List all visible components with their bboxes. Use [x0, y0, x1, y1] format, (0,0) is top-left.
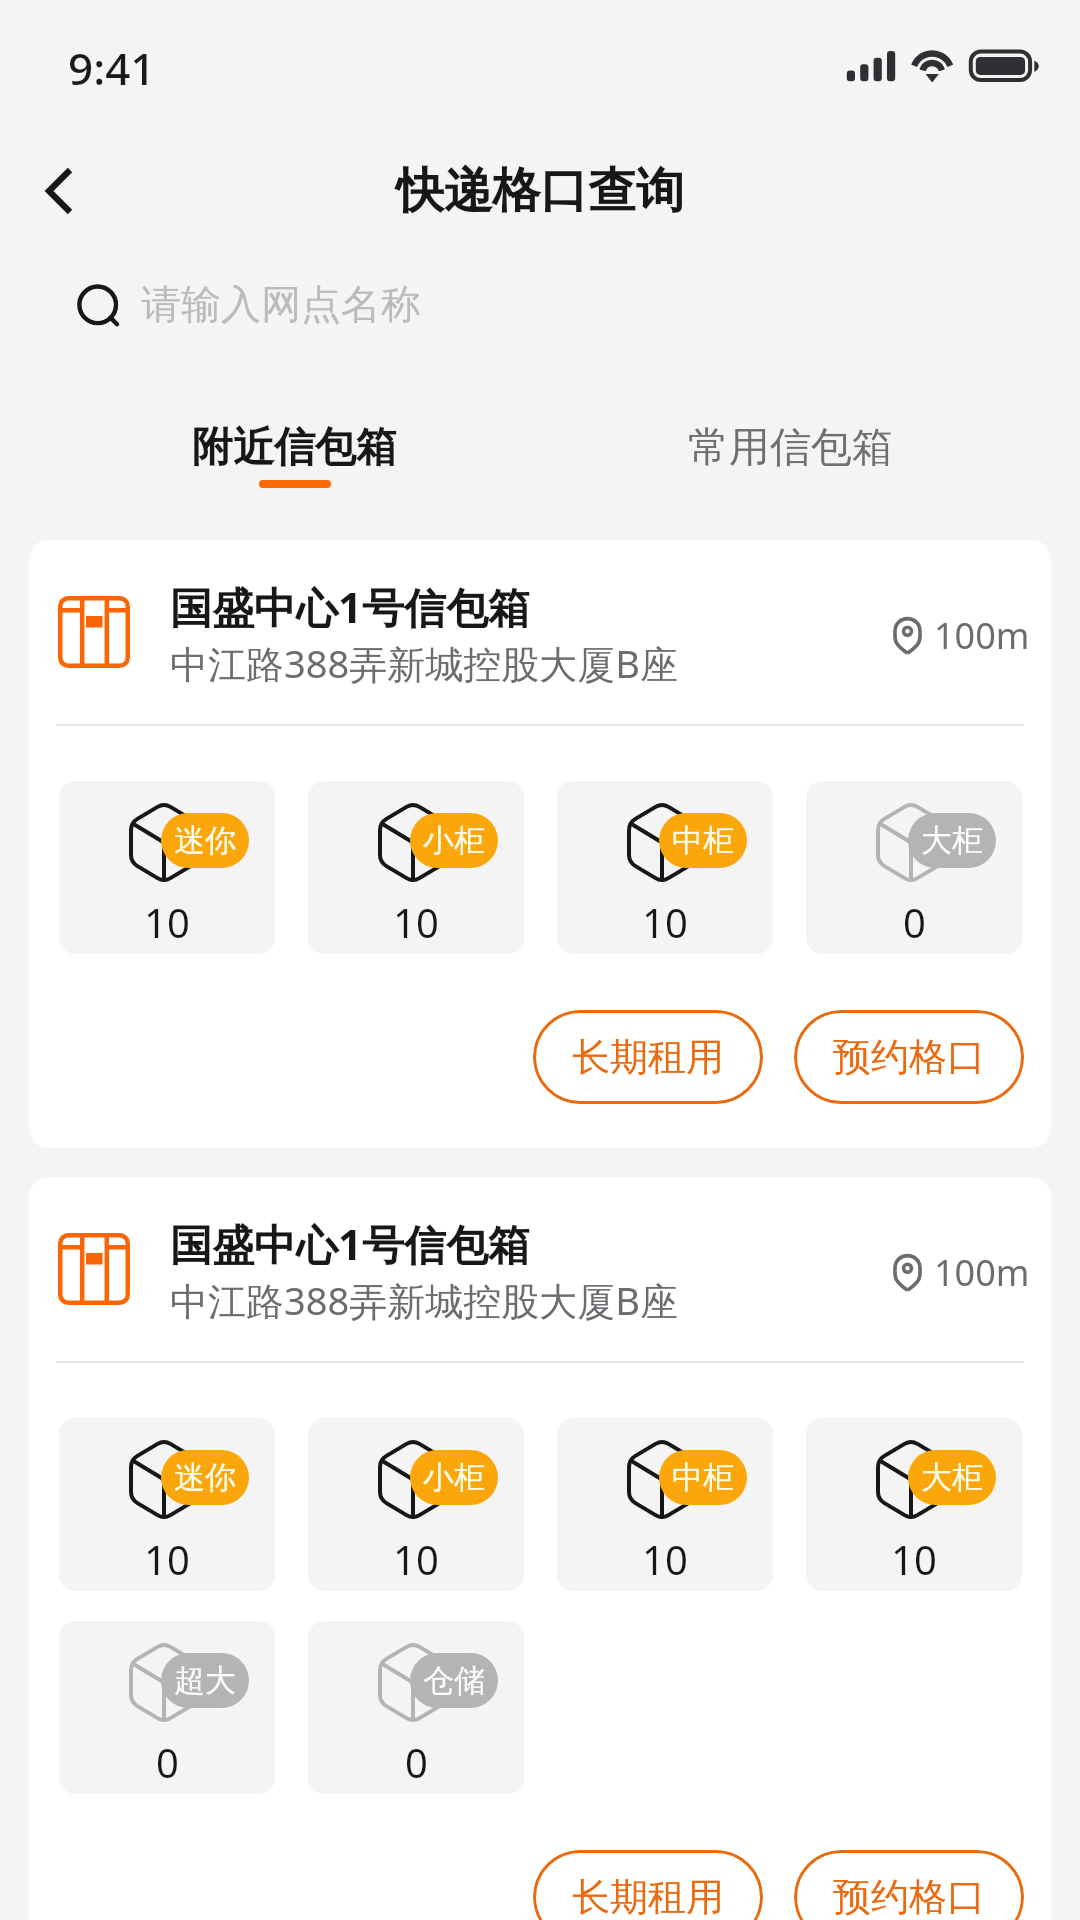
- staticText: 迷你: [174, 821, 236, 860]
- staticText: 0: [405, 1735, 428, 1789]
- staticText: 100m: [934, 611, 1030, 660]
- staticText: 10: [144, 1532, 190, 1586]
- staticText: 国盛中心1号信包箱: [170, 1215, 531, 1272]
- staticText: 附近信包箱: [192, 422, 397, 474]
- staticText: 中江路388弄新城控股大厦B座: [170, 637, 678, 689]
- button[interactable]: 预约格口: [794, 1010, 1024, 1104]
- staticText: 中江路388弄新城控股大厦B座: [170, 1274, 678, 1326]
- staticText: 0: [156, 1735, 179, 1789]
- staticText: 100m: [934, 1248, 1030, 1297]
- button[interactable]: 小柜: [308, 781, 524, 954]
- button[interactable]: 附近信包箱: [152, 396, 436, 496]
- button[interactable]: 大柜: [806, 1418, 1022, 1591]
- button[interactable]: 大柜: [806, 781, 1022, 954]
- button[interactable]: 长期租用: [533, 1850, 763, 1920]
- staticText: 大柜: [921, 1458, 983, 1497]
- staticText: 10: [642, 895, 688, 949]
- staticText: 请输入网点名称: [141, 279, 421, 329]
- button[interactable]: 中柜: [557, 781, 773, 954]
- button[interactable]: 仓储: [308, 1621, 524, 1794]
- staticText: 10: [891, 1532, 937, 1586]
- button[interactable]: Back: [19, 151, 99, 231]
- staticText: 长期租用: [572, 1873, 724, 1920]
- button[interactable]: 迷你: [59, 1418, 275, 1591]
- staticText: 10: [642, 1532, 688, 1586]
- button[interactable]: 预约格口: [794, 1850, 1024, 1920]
- staticText: 0: [903, 895, 926, 949]
- staticText: 国盛中心1号信包箱: [170, 578, 531, 635]
- staticText: 仓储: [423, 1661, 485, 1700]
- staticText: 迷你: [174, 1458, 236, 1497]
- staticText: 10: [144, 895, 190, 949]
- button[interactable]: 迷你: [59, 781, 275, 954]
- staticText: 小柜: [423, 821, 485, 860]
- button[interactable]: 长期租用: [533, 1010, 763, 1104]
- button[interactable]: 常用信包箱: [648, 396, 932, 496]
- staticText: 长期租用: [572, 1033, 724, 1081]
- button[interactable]: 超大: [59, 1621, 275, 1794]
- staticText: 小柜: [423, 1458, 485, 1497]
- staticText: 快递格口查询: [396, 161, 684, 221]
- button[interactable]: 中柜: [557, 1418, 773, 1591]
- button[interactable]: 请输入网点名称: [0, 262, 1080, 346]
- staticText: 9:41: [68, 38, 156, 98]
- staticText: 10: [393, 1532, 439, 1586]
- staticText: 大柜: [921, 821, 983, 860]
- button[interactable]: 小柜: [308, 1418, 524, 1591]
- staticText: 中柜: [672, 821, 734, 860]
- button[interactable]: 国盛中心1号信包箱: [29, 1177, 1051, 1920]
- staticText: 预约格口: [833, 1873, 985, 1920]
- staticText: 预约格口: [833, 1033, 985, 1081]
- staticText: 10: [393, 895, 439, 949]
- staticText: 中柜: [672, 1458, 734, 1497]
- staticText: 常用信包箱: [688, 422, 893, 474]
- button[interactable]: 国盛中心1号信包箱: [29, 540, 1051, 1148]
- staticText: 超大: [174, 1661, 236, 1700]
